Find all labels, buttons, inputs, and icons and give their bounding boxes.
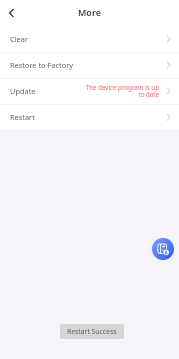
staticText: The device program is up to date	[85, 83, 159, 99]
button[interactable]: Restore to Factory	[0, 53, 179, 79]
staticText: Restart	[10, 112, 35, 122]
staticText: Restore to Factory	[10, 60, 73, 70]
staticText: Update	[10, 86, 36, 96]
staticText: Clear	[10, 34, 28, 44]
button[interactable]: Update	[0, 79, 179, 105]
button[interactable]: Restart	[0, 105, 179, 130]
button[interactable]: Clear	[0, 27, 179, 53]
staticText: Restart Success	[67, 327, 117, 336]
button[interactable]: Back	[0, 2, 22, 24]
staticText: More	[78, 6, 101, 18]
button[interactable]: New document	[152, 238, 174, 260]
